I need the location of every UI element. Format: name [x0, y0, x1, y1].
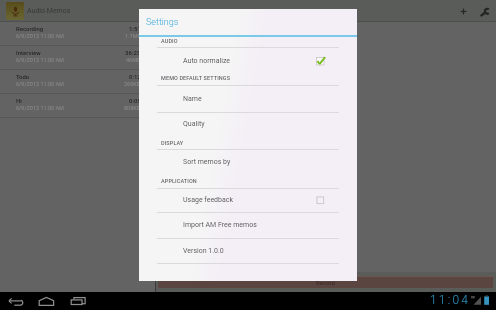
button[interactable]: Home: [35, 293, 58, 309]
staticText: 6/9/2012 11:00 AM: [16, 81, 64, 87]
staticText: Hi: [16, 97, 22, 104]
staticText: 1:51: [129, 25, 141, 32]
button[interactable]: Recent apps: [67, 293, 89, 309]
button[interactable]: Audio Memos app: [6, 2, 24, 20]
button[interactable]: Settings: [474, 0, 496, 22]
button[interactable]: Sort memos by: [139, 150, 357, 174]
staticText: Audio Memos: [27, 7, 71, 15]
staticText: DISPLAY: [161, 140, 184, 146]
staticText: Import AM Free memos: [183, 221, 257, 229]
staticText: 0:12: [129, 73, 141, 80]
staticText: MEMO DEFAULT SETTINGS: [161, 75, 231, 81]
button[interactable]: Interview: [0, 46, 155, 70]
staticText: Version 1.0.0: [183, 247, 224, 255]
staticText: 0:05: [129, 97, 141, 104]
button[interactable]: New memo: [452, 0, 474, 22]
staticText: Usage feedback: [183, 196, 234, 204]
button[interactable]: Recording: [0, 22, 155, 46]
staticText: 6/9/2012 11:00 AM: [16, 57, 64, 63]
staticText: Interview: [16, 49, 41, 56]
staticText: Name: [183, 95, 202, 103]
button[interactable]: Todo: [0, 70, 155, 94]
staticText: Sort memos by: [183, 158, 231, 166]
button[interactable]: Auto normalize: [139, 49, 357, 73]
staticText: 46MB: [126, 57, 141, 63]
button[interactable]: Usage feedback: [139, 188, 357, 212]
staticText: APPLICATION: [161, 178, 197, 184]
button[interactable]: Name: [139, 87, 357, 111]
button[interactable]: Record: [158, 276, 493, 288]
staticText: Record: [316, 279, 335, 286]
button[interactable]: Version 1.0.0: [139, 239, 357, 263]
staticText: 808KB: [124, 105, 141, 111]
button[interactable]: Back: [4, 293, 28, 309]
staticText: 11:04: [430, 293, 471, 307]
staticText: AUDIO: [161, 38, 178, 44]
staticText: 1.7MB: [125, 33, 141, 39]
staticText: Settings: [146, 17, 179, 28]
button[interactable]: Quality: [139, 112, 357, 136]
staticText: Auto normalize: [183, 57, 231, 65]
staticText: 260KB: [124, 81, 141, 87]
staticText: 36:23: [125, 49, 141, 56]
staticText: Todo: [16, 73, 30, 80]
staticText: 6/9/2012 11:00 AM: [16, 105, 64, 111]
staticText: Recording: [16, 25, 44, 32]
staticText: 6/9/2012 11:00 AM: [16, 33, 64, 39]
button[interactable]: Import AM Free memos: [139, 213, 357, 237]
button[interactable]: Hi: [0, 94, 155, 118]
staticText: Quality: [183, 120, 205, 128]
